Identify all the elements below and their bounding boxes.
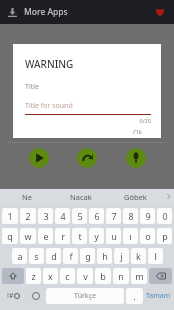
staticText: Göbek xyxy=(124,192,147,202)
button[interactable]: Nacak xyxy=(54,189,108,204)
button[interactable]: e xyxy=(38,228,53,244)
button[interactable]: f xyxy=(63,248,78,264)
staticText: Title for sound xyxy=(25,101,73,111)
button[interactable]: Tamam xyxy=(144,286,173,306)
staticText: l xyxy=(154,250,157,262)
button[interactable]: l xyxy=(148,248,163,264)
button[interactable]: 8 xyxy=(123,208,138,224)
button[interactable]: Emoji xyxy=(27,288,44,304)
staticText: y xyxy=(94,230,99,242)
staticText: r xyxy=(61,230,65,242)
staticText: More Apps xyxy=(24,6,68,18)
staticText: p xyxy=(162,230,168,242)
staticText: 9 xyxy=(145,210,151,222)
button[interactable]: Record xyxy=(126,148,146,168)
button[interactable]: o xyxy=(140,228,155,244)
staticText: c xyxy=(65,270,70,282)
button[interactable]: More Apps xyxy=(6,6,19,19)
button[interactable]: g xyxy=(80,248,95,264)
button[interactable]: r xyxy=(55,228,70,244)
staticText: 7 xyxy=(111,210,117,222)
button[interactable]: 5 xyxy=(72,208,87,224)
button[interactable]: y xyxy=(89,228,104,244)
staticText: b xyxy=(100,270,106,282)
button[interactable]: q xyxy=(2,228,18,244)
staticText: w xyxy=(24,230,32,242)
staticText: 2 xyxy=(25,210,31,222)
button[interactable]: 1 xyxy=(2,208,18,224)
button[interactable]: Türkçe xyxy=(46,288,124,304)
staticText: 6 xyxy=(94,210,100,222)
staticText: 0/20 xyxy=(25,117,151,124)
staticText: t xyxy=(78,230,82,242)
button[interactable]: v xyxy=(77,268,93,284)
staticText: 5 xyxy=(77,210,83,222)
button[interactable]: Next xyxy=(77,148,97,168)
button[interactable]: Ok xyxy=(125,124,151,138)
staticText: Ne xyxy=(22,192,32,202)
staticText: Nacak xyxy=(70,192,92,202)
button[interactable]: Play xyxy=(29,148,49,168)
button[interactable]: x xyxy=(43,268,58,284)
button[interactable]: u xyxy=(106,228,121,244)
button[interactable]: 4 xyxy=(55,208,70,224)
button[interactable]: w xyxy=(20,228,36,244)
staticText: j xyxy=(120,250,123,262)
staticText: d xyxy=(51,250,57,262)
button[interactable]: b xyxy=(95,268,111,284)
staticText: n xyxy=(118,270,124,282)
button[interactable]: m xyxy=(131,268,147,284)
staticText: g xyxy=(85,250,91,262)
button[interactable]: Göbek xyxy=(108,189,162,204)
button[interactable]: c xyxy=(60,268,75,284)
button[interactable]: k xyxy=(131,248,146,264)
button[interactable]: d xyxy=(46,248,61,264)
staticText: e xyxy=(43,230,49,242)
button[interactable]: t xyxy=(72,228,87,244)
staticText: o xyxy=(145,230,151,242)
button[interactable]: Ne xyxy=(0,189,54,204)
button[interactable]: ı xyxy=(123,228,138,244)
staticText: Tamam xyxy=(146,291,171,301)
button[interactable]: More suggestions xyxy=(162,189,174,204)
staticText: 0 xyxy=(162,210,168,222)
staticText: v xyxy=(83,270,88,282)
staticText: Title xyxy=(25,82,39,92)
button[interactable]: 6 xyxy=(89,208,104,224)
staticText: Ok xyxy=(133,128,143,134)
button[interactable]: . xyxy=(126,288,143,304)
button[interactable]: 9 xyxy=(140,208,155,224)
staticText: Paki xyxy=(0,128,174,138)
button[interactable]: 3 xyxy=(38,208,53,224)
button[interactable]: 2 xyxy=(20,208,36,224)
staticText: 3 xyxy=(43,210,49,222)
button[interactable]: 7 xyxy=(106,208,121,224)
staticText: u xyxy=(111,230,117,242)
button[interactable]: Shift xyxy=(2,268,24,284)
staticText: !# xyxy=(7,291,14,301)
button[interactable]: p xyxy=(157,228,172,244)
staticText: h xyxy=(102,250,108,262)
staticText: Türkçe xyxy=(74,291,96,301)
staticText: z xyxy=(31,270,36,282)
button[interactable]: h xyxy=(97,248,112,264)
staticText: ı xyxy=(129,230,132,242)
button[interactable]: a xyxy=(12,248,27,264)
staticText: s xyxy=(34,250,39,262)
staticText: 4 xyxy=(60,210,66,222)
staticText: 1 xyxy=(7,210,13,222)
button[interactable]: n xyxy=(113,268,129,284)
staticText: WARNING xyxy=(25,57,74,71)
button[interactable]: z xyxy=(26,268,41,284)
staticText: x xyxy=(48,270,53,282)
button[interactable]: 0 xyxy=(157,208,172,224)
button[interactable]: Backspace xyxy=(149,268,172,284)
staticText: 8 xyxy=(128,210,134,222)
button[interactable]: Symbols xyxy=(2,288,25,304)
button[interactable]: Favorite xyxy=(152,4,168,20)
staticText: q xyxy=(7,230,13,242)
button[interactable]: s xyxy=(29,248,44,264)
staticText: a xyxy=(17,250,23,262)
button[interactable]: j xyxy=(114,248,129,264)
staticText: k xyxy=(136,250,141,262)
